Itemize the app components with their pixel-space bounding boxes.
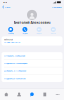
button[interactable]: Отправить сообщение [1, 52, 62, 59]
staticText: Чаты [5, 5, 11, 9]
button[interactable]: Ещё [51, 89, 64, 100]
staticText: Поделиться геопозицией [4, 62, 27, 65]
button[interactable]: Документы [38, 89, 51, 100]
button[interactable]: мобильный [1, 36, 62, 45]
staticText: сообщ. [8, 32, 13, 35]
staticText: почта [51, 32, 56, 35]
staticText: Поделиться контактом [4, 77, 26, 80]
button[interactable]: Чаты [26, 89, 38, 100]
button[interactable]: сообщ. [4, 27, 18, 35]
button[interactable]: видео [32, 27, 46, 35]
staticText: видео [37, 32, 42, 35]
button[interactable]: Изменить [50, 4, 63, 9]
staticText: Анатолий Алексеевич [13, 20, 50, 25]
staticText: +7 985 497-44-12 [4, 41, 20, 43]
button[interactable]: Добавить в Избранное [1, 67, 62, 74]
button[interactable]: почта [46, 27, 60, 35]
button[interactable]: аудио [18, 27, 32, 35]
staticText: Отправить сообщение [4, 54, 25, 57]
button[interactable]: Главная [0, 89, 13, 100]
staticText: Изменить [52, 5, 62, 9]
button[interactable]: Контакты [13, 89, 26, 100]
staticText: мобильный [4, 38, 13, 41]
staticText: Добавить в Избранное [4, 69, 26, 72]
button[interactable]: Чаты [1, 4, 12, 9]
staticText: 9:41 [3, 1, 7, 4]
staticText: аудио [22, 32, 27, 35]
button[interactable]: Поделиться контактом [1, 75, 62, 82]
button[interactable]: Поделиться геопозицией [1, 60, 62, 67]
